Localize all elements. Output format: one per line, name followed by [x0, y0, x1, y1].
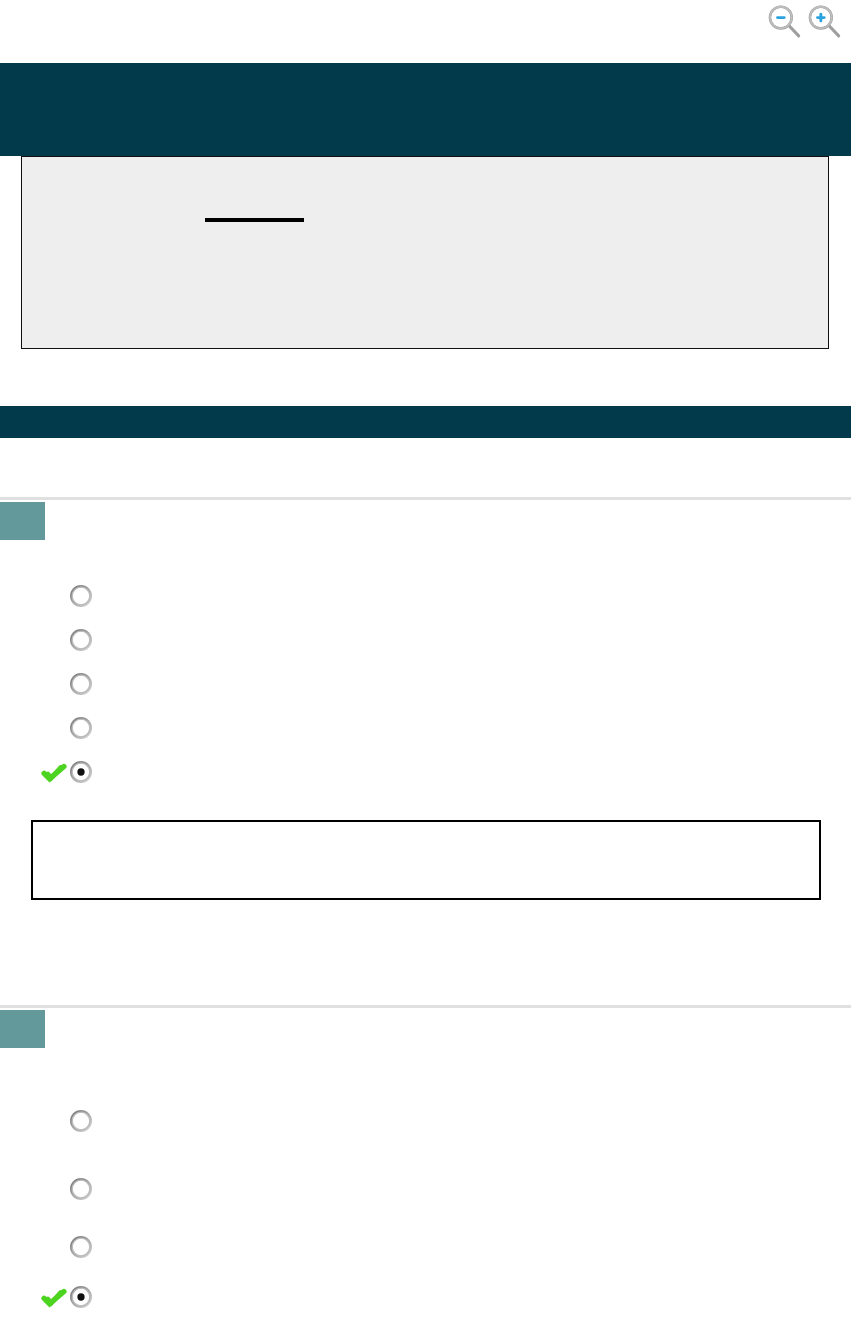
button[interactable]: Option — [70, 717, 92, 739]
button[interactable]: Option — [70, 1178, 92, 1200]
button[interactable]: Selected option — [0, 1286, 851, 1316]
button[interactable]: Option — [0, 629, 851, 673]
button[interactable]: Option — [0, 673, 851, 717]
button[interactable]: Option — [0, 1178, 851, 1236]
button[interactable]: Selected option — [70, 761, 92, 783]
button[interactable]: Option — [70, 585, 92, 607]
button[interactable]: Selected option — [70, 1286, 92, 1308]
button[interactable]: Option — [70, 1110, 92, 1132]
button[interactable]: Option — [0, 1110, 851, 1178]
button[interactable]: Selected option — [0, 761, 851, 794]
button[interactable]: Option — [0, 1236, 851, 1286]
button[interactable]: Option — [0, 717, 851, 761]
button[interactable]: Option — [70, 1236, 92, 1258]
button[interactable]: Zoom out — [765, 2, 801, 44]
button[interactable] — [31, 820, 821, 900]
button[interactable]: Option — [0, 585, 851, 629]
button[interactable]: Zoom in — [805, 2, 841, 44]
button[interactable]: Option — [70, 673, 92, 695]
button[interactable]: Option — [70, 629, 92, 651]
